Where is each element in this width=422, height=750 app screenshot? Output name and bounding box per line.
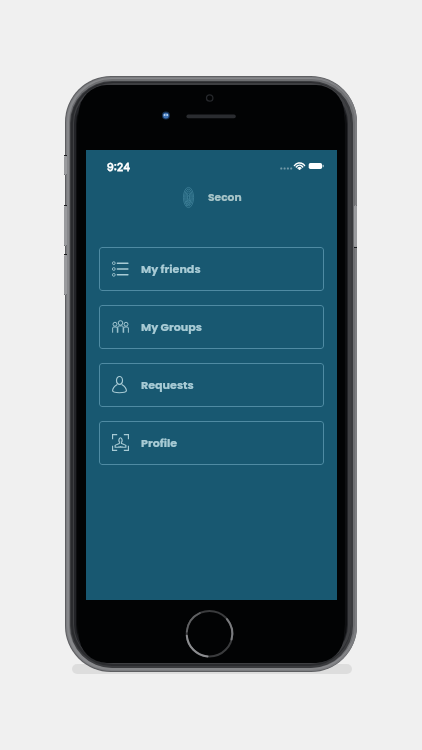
staticText: Profile bbox=[141, 435, 178, 451]
staticText: Requests bbox=[141, 377, 194, 393]
staticText: Secon bbox=[208, 190, 242, 205]
button[interactable]: groups bbox=[99, 305, 324, 349]
button[interactable]: requests bbox=[99, 363, 324, 407]
button[interactable]: list of friends bbox=[99, 247, 324, 291]
staticText: My friends bbox=[141, 261, 201, 277]
staticText: 9:24 bbox=[107, 161, 131, 174]
staticText: My Groups bbox=[141, 319, 203, 335]
button[interactable]: profile bbox=[99, 421, 324, 465]
